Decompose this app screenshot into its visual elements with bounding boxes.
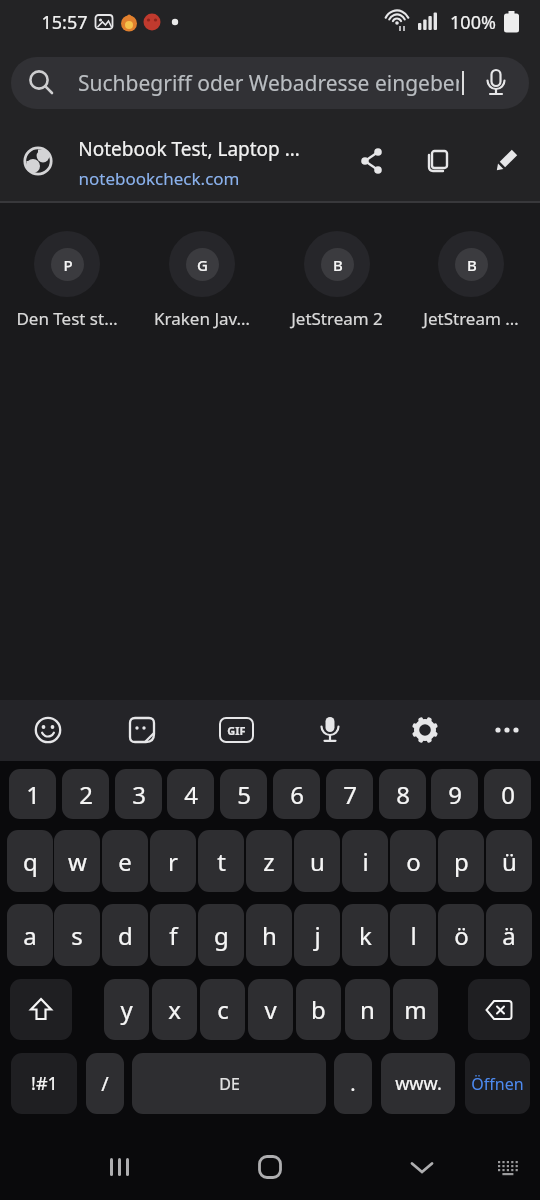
button[interactable] [495,1154,521,1180]
staticText: notebookcheck.com [78,167,240,190]
button[interactable]: c [200,979,245,1040]
staticText: Den Test st… [16,307,118,330]
staticText: 1 [26,778,40,811]
staticText: b [311,993,326,1026]
staticText: u [310,845,325,878]
button[interactable]: / [86,1053,124,1114]
button[interactable]: l [390,904,436,966]
button[interactable]: d [102,904,148,966]
button[interactable]: Öffnen [465,1053,530,1114]
button[interactable]: w [54,830,100,892]
button[interactable]: v [248,979,293,1040]
staticText: n [360,993,375,1026]
button[interactable] [493,716,521,744]
staticText: r [168,845,178,878]
staticText: q [23,845,38,878]
staticText: GIF [227,723,246,738]
button[interactable]: a [7,904,53,966]
staticText: w [68,845,87,878]
button[interactable]: z [246,830,292,892]
button[interactable]: 3 [115,769,162,819]
staticText: Notebook Test, Laptop … [78,136,300,162]
button[interactable]: 1 [9,769,56,819]
button[interactable]: G [169,231,235,297]
staticText: DE [219,1073,240,1095]
button[interactable]: m [393,979,438,1040]
button[interactable]: t [198,830,244,892]
button[interactable] [125,713,159,747]
staticText: x [168,993,181,1026]
button[interactable]: P [34,231,100,297]
staticText: 2 [79,778,93,811]
button[interactable]: ü [486,830,532,892]
button[interactable]: 4 [167,769,214,819]
staticText: e [118,845,132,878]
button[interactable]: 6 [273,769,320,819]
button[interactable] [314,714,346,746]
staticText: B [333,255,343,275]
button[interactable] [407,1152,437,1182]
button[interactable]: p [438,830,484,892]
staticText: 9 [448,778,462,811]
button[interactable]: 8 [379,769,426,819]
button[interactable]: 7 [326,769,373,819]
button[interactable]: f [150,904,196,966]
staticText: p [454,845,469,878]
button[interactable] [10,979,72,1040]
button[interactable]: e [102,830,148,892]
button[interactable]: h [246,904,292,966]
staticText: 4 [184,778,198,811]
button[interactable]: 9 [431,769,478,819]
button[interactable] [170,17,180,27]
staticText: m [404,993,427,1026]
staticText: 5 [237,778,251,811]
button[interactable]: ä [486,904,532,966]
button[interactable] [384,7,412,35]
button[interactable] [142,12,162,32]
button[interactable]: b [296,979,341,1040]
staticText: P [63,255,73,275]
button[interactable] [31,713,65,747]
staticText: s [71,919,83,952]
button[interactable]: k [342,904,388,966]
button[interactable] [416,10,440,34]
button[interactable]: x [152,979,197,1040]
button[interactable]: B [304,231,370,297]
button[interactable] [0,120,340,200]
button[interactable] [356,145,388,177]
button[interactable]: www. [381,1053,455,1114]
button[interactable]: ö [438,904,484,966]
button[interactable] [490,145,522,177]
button[interactable]: j [294,904,340,966]
button[interactable] [408,713,442,747]
staticText: 6 [290,778,304,811]
button[interactable]: s [54,904,100,966]
button[interactable]: r [150,830,196,892]
button[interactable] [255,1152,285,1182]
button[interactable]: 5 [220,769,267,819]
staticText: G [197,255,208,275]
button[interactable]: g [198,904,244,966]
button[interactable]: q [7,830,53,892]
button[interactable]: 2 [62,769,109,819]
button[interactable]: GIF [219,717,254,743]
button[interactable]: 0 [484,769,531,819]
button[interactable]: u [294,830,340,892]
button[interactable]: n [345,979,390,1040]
button[interactable]: y [104,979,149,1040]
button[interactable]: . [334,1053,372,1114]
button[interactable] [422,145,454,177]
button[interactable] [119,12,139,32]
button[interactable]: o [390,830,436,892]
button[interactable] [499,9,525,35]
button[interactable]: Suchbegriff oder Webadresse eingeben [11,57,529,109]
button[interactable] [105,1152,135,1182]
button[interactable]: i [342,830,388,892]
button[interactable] [93,11,115,33]
staticText: o [406,845,421,878]
button[interactable]: B [438,231,504,297]
button[interactable]: !#1 [11,1053,77,1114]
button[interactable]: DE [132,1053,326,1114]
button[interactable] [468,979,530,1040]
staticText: JetStream … [423,307,519,330]
